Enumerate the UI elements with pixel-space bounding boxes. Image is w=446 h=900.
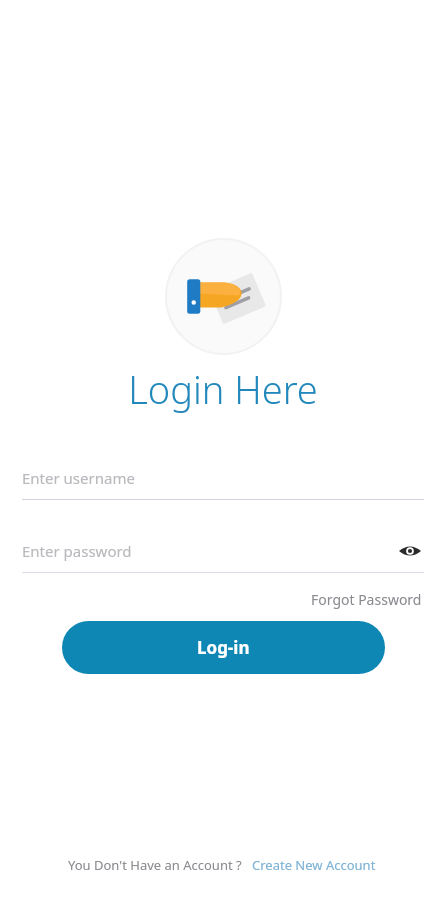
staticText: You Don't Have an Account ? bbox=[68, 856, 242, 874]
staticText: Enter password bbox=[22, 541, 396, 561]
button[interactable]: Enter password bbox=[22, 536, 424, 566]
staticText: Login Here bbox=[128, 363, 318, 415]
staticText: Forgot Password bbox=[311, 590, 422, 609]
staticText: Enter username bbox=[22, 468, 135, 488]
button[interactable]: Create New Account bbox=[250, 853, 378, 877]
button[interactable]: Log-in bbox=[62, 621, 385, 674]
button[interactable]: Show password bbox=[396, 537, 424, 565]
staticText: Log-in bbox=[197, 636, 250, 659]
button[interactable]: Forgot Password bbox=[309, 587, 424, 612]
staticText: Create New Account bbox=[252, 856, 376, 874]
button[interactable]: Enter username bbox=[22, 463, 424, 500]
